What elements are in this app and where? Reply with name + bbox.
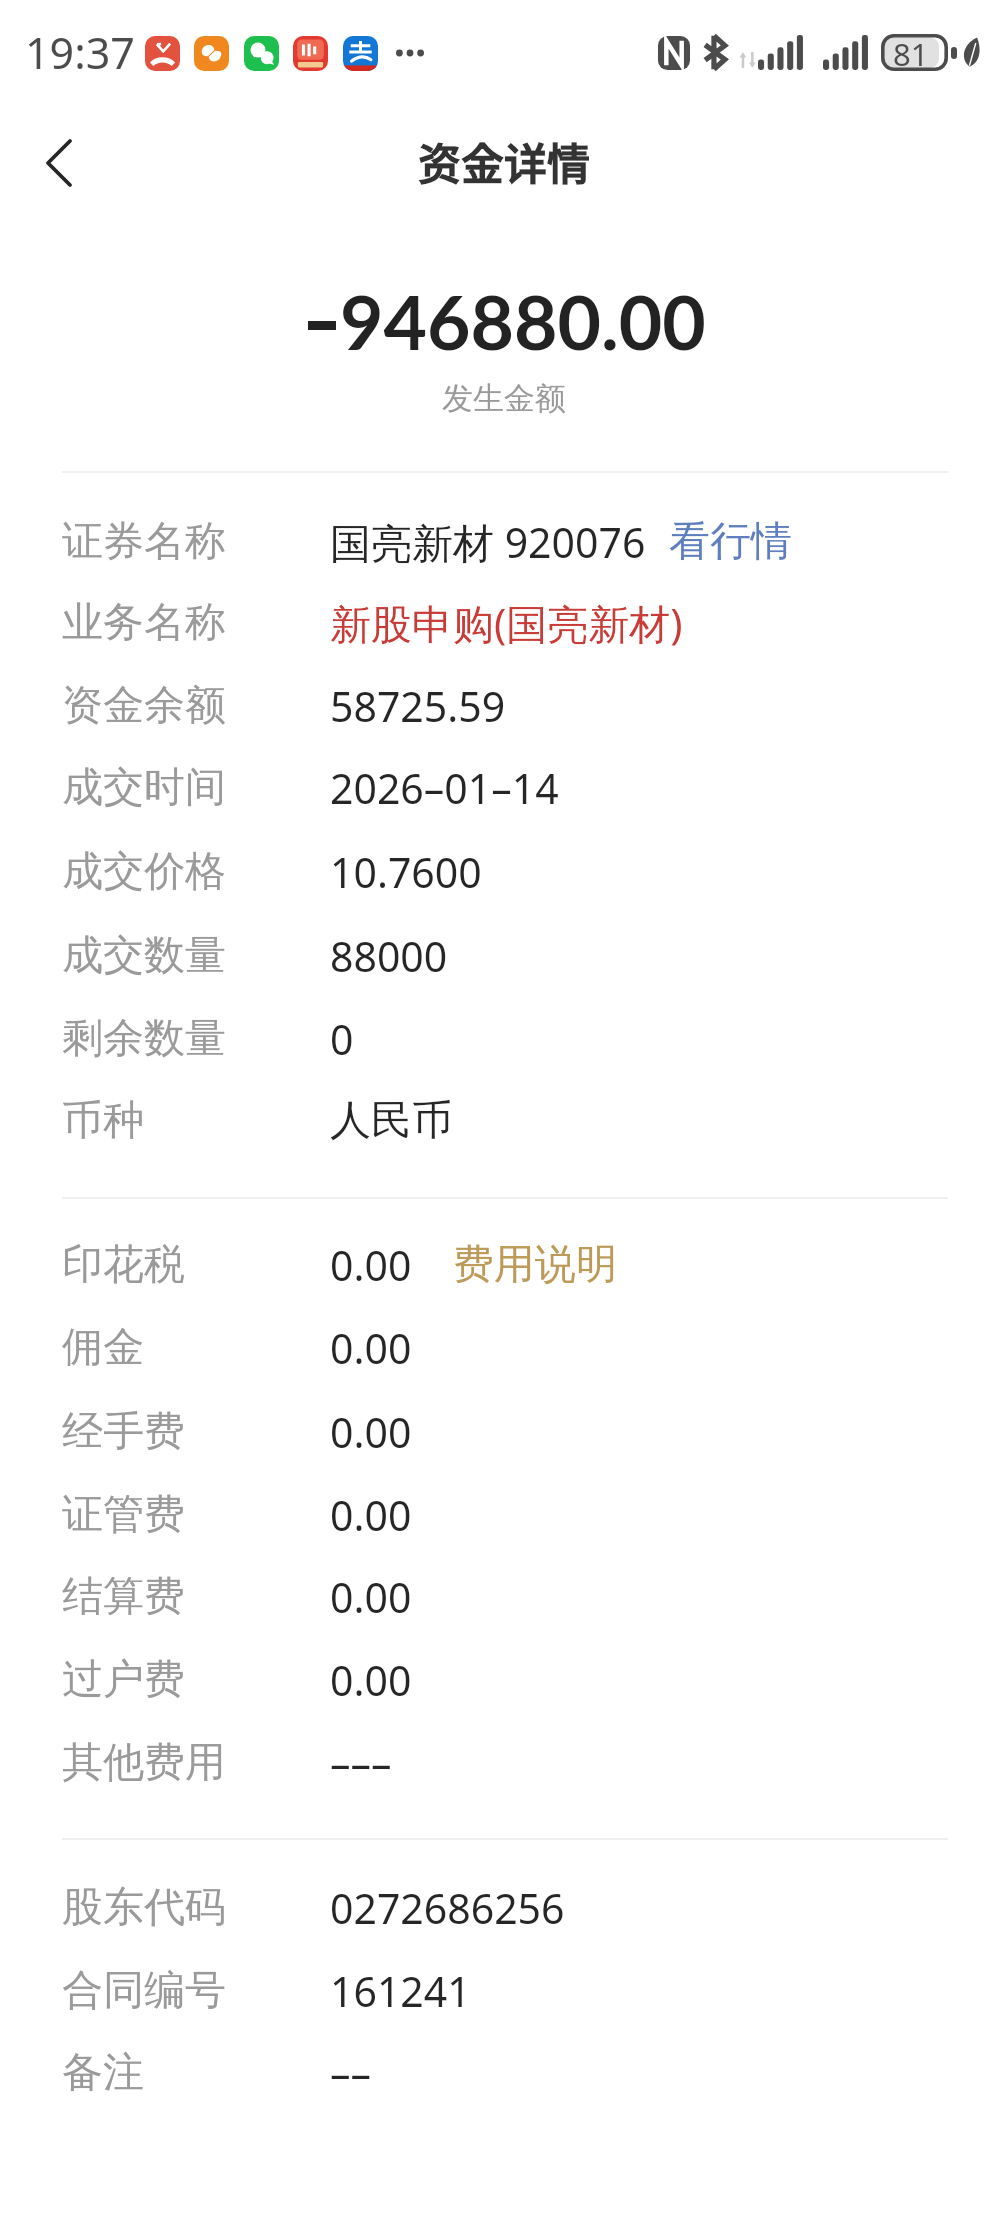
staticText: 人民币 (330, 1095, 453, 1147)
staticText: 币种 (62, 1095, 144, 1147)
staticText: 成交时间 (62, 762, 226, 814)
staticText: 0.00 (330, 1569, 412, 1625)
staticText: 161241 (330, 1963, 471, 2019)
button[interactable] (0, 1638, 1008, 1720)
staticText: 0.00 (330, 1652, 412, 1708)
button[interactable] (445, 1228, 627, 1300)
button[interactable] (0, 500, 1008, 582)
staticText: 19:37 (25, 23, 135, 82)
staticText: 看行情 (669, 516, 792, 568)
staticText: 0272686256 (330, 1880, 565, 1936)
button[interactable] (0, 746, 1008, 828)
staticText: 其他费用 (62, 1737, 226, 1789)
button[interactable] (0, 1555, 1008, 1637)
staticText: 业务名称 (62, 597, 226, 649)
button[interactable] (0, 997, 1008, 1079)
button[interactable] (0, 664, 1008, 746)
staticText: 0 (330, 1011, 354, 1067)
button[interactable] (0, 914, 1008, 996)
staticText: 证券名称 (62, 516, 226, 568)
staticText: 费用说明 (453, 1239, 617, 1291)
staticText: 经手费 (62, 1406, 185, 1458)
staticText: 0.00 (330, 1404, 412, 1460)
staticText: ––– (330, 1735, 392, 1791)
button[interactable] (0, 1721, 1008, 1803)
staticText: –– (330, 2045, 371, 2101)
button[interactable] (0, 1390, 1008, 1472)
staticText: 946880.00 (340, 276, 706, 366)
staticText: 股东代码 (62, 1882, 226, 1934)
staticText: 成交数量 (62, 930, 226, 982)
staticText: 剩余数量 (62, 1013, 226, 1065)
button[interactable] (0, 830, 1008, 912)
staticText: 过户费 (62, 1654, 185, 1706)
staticText: 合同编号 (62, 1965, 226, 2017)
staticText: 佣金 (62, 1322, 144, 1374)
button[interactable] (0, 1473, 1008, 1555)
staticText: 备注 (62, 2047, 144, 2099)
staticText: 88000 (330, 928, 448, 984)
staticText: 资金余额 (62, 680, 226, 732)
staticText: 0.00 (330, 1487, 412, 1543)
staticText: 印花税 (62, 1239, 185, 1291)
staticText: 成交价格 (62, 846, 226, 898)
button[interactable] (0, 1079, 1008, 1161)
button[interactable] (0, 581, 1008, 663)
staticText: 81 (893, 33, 929, 70)
staticText: 2026–01–14 (330, 760, 559, 816)
staticText: 0.00 (330, 1237, 412, 1293)
staticText: 0.00 (330, 1320, 412, 1376)
staticText: 10.7600 (330, 844, 482, 900)
staticText: 新股申购(国亮新材) (330, 595, 683, 651)
button[interactable] (0, 2031, 1008, 2113)
staticText: 发生金额 (0, 379, 1008, 418)
button[interactable] (0, 1866, 1008, 1948)
button[interactable] (659, 505, 801, 577)
staticText: 58725.59 (330, 678, 506, 734)
button[interactable]: Back (18, 123, 98, 203)
staticText: 国亮新材 920076 (330, 514, 646, 570)
staticText: 资金详情 (0, 130, 1008, 192)
button[interactable] (0, 1949, 1008, 2031)
button[interactable] (0, 1306, 1008, 1388)
button[interactable] (0, 1223, 1008, 1305)
staticText: 证管费 (62, 1489, 185, 1541)
staticText: 结算费 (62, 1571, 185, 1623)
